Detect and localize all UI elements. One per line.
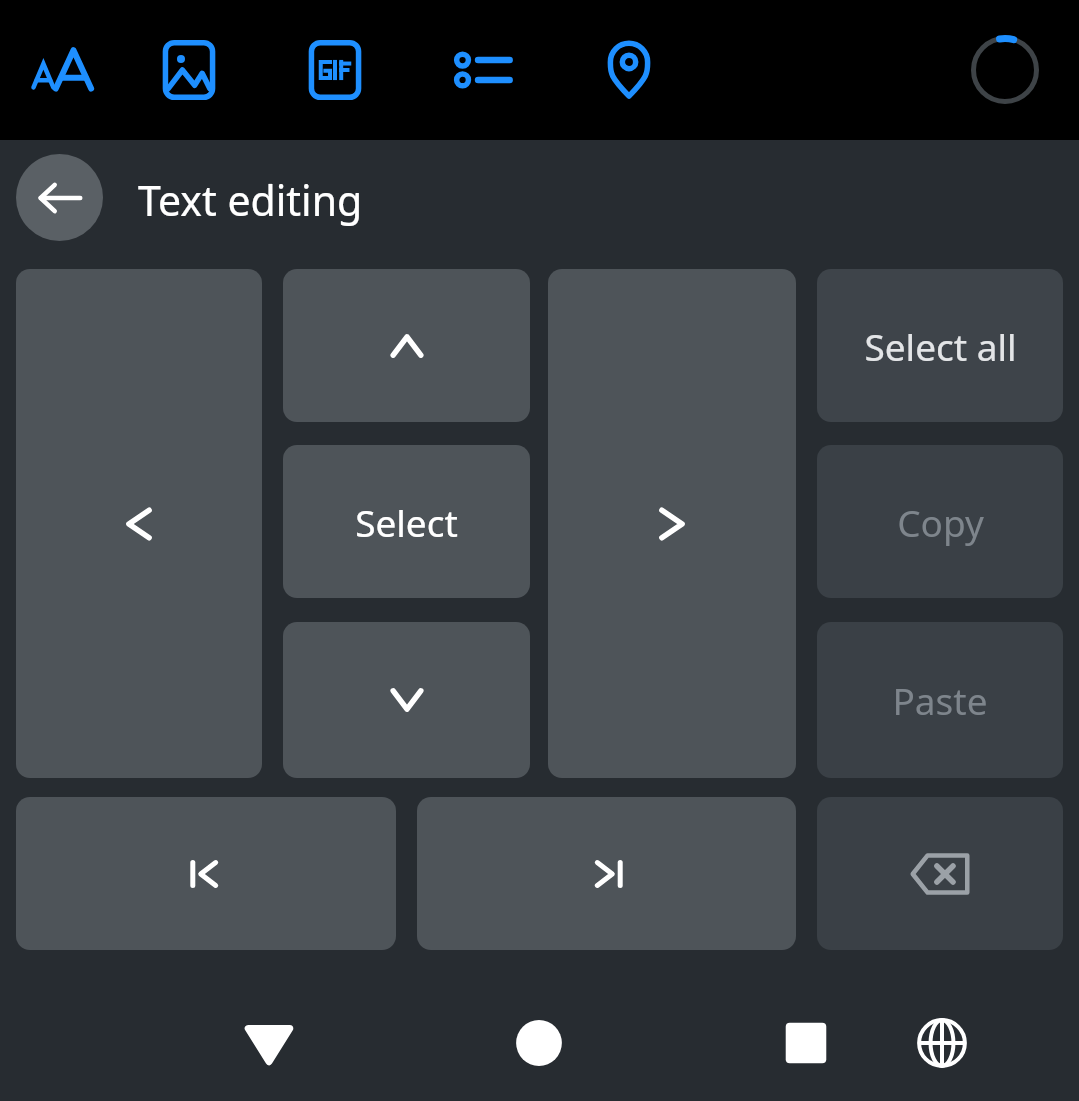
button[interactable]: Insert list (439, 26, 527, 114)
button[interactable]: Insert GIF (291, 26, 379, 114)
button[interactable]: Move cursor up (283, 269, 530, 422)
staticText: Text editing (138, 172, 363, 228)
button[interactable]: Move to start (16, 797, 396, 950)
button[interactable]: Loading (965, 30, 1045, 110)
button[interactable]: Backspace (817, 797, 1063, 950)
button[interactable]: Recent apps (766, 1003, 846, 1083)
button[interactable]: Switch keyboard language (902, 1003, 982, 1083)
button[interactable]: Move cursor left (16, 269, 262, 778)
button[interactable]: Hide keyboard (229, 1003, 309, 1083)
button[interactable]: Select (283, 445, 530, 598)
button[interactable]: Home (499, 1003, 579, 1083)
button[interactable]: Select all (817, 269, 1063, 422)
button[interactable]: Text formatting (18, 26, 106, 114)
button[interactable]: Back (16, 154, 103, 241)
button[interactable]: Paste (817, 622, 1063, 778)
button[interactable]: Move to end (417, 797, 796, 950)
button[interactable]: Move cursor right (548, 269, 796, 778)
button[interactable]: Copy (817, 445, 1063, 598)
staticText: Copy (897, 497, 984, 547)
staticText: Select all (864, 321, 1017, 371)
button[interactable]: Insert image (145, 26, 233, 114)
button[interactable]: Move cursor down (283, 622, 530, 778)
staticText: Paste (892, 675, 988, 725)
button[interactable]: Share location (585, 26, 673, 114)
staticText: Select (355, 497, 458, 547)
